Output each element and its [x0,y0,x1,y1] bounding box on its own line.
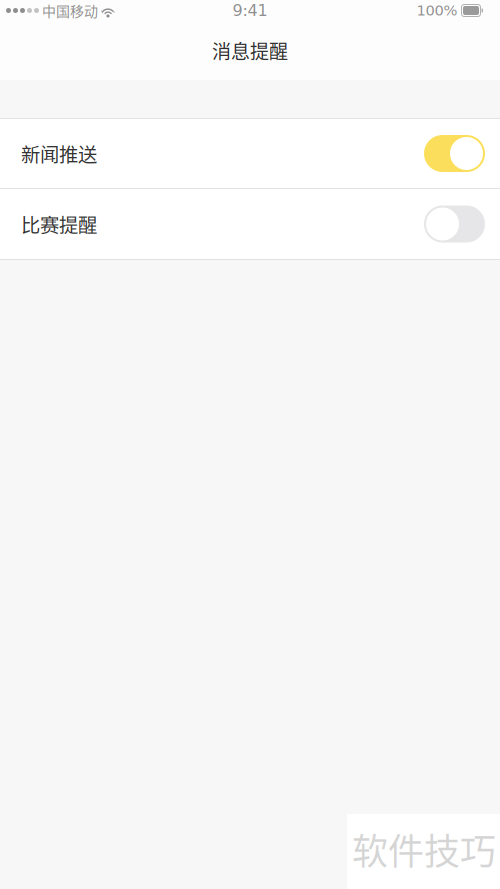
staticText: 100% [416,2,457,19]
staticText: 中国移动 [42,0,98,21]
button[interactable]: 新闻推送 [0,119,500,188]
staticText: 9:41 [232,1,267,20]
staticText: 新闻推送 [21,139,97,167]
staticText: 软件技巧 [352,823,496,875]
staticText: 比赛提醒 [21,210,97,238]
button[interactable]: 比赛提醒 [0,189,500,259]
staticText: 消息提醒 [212,37,288,64]
